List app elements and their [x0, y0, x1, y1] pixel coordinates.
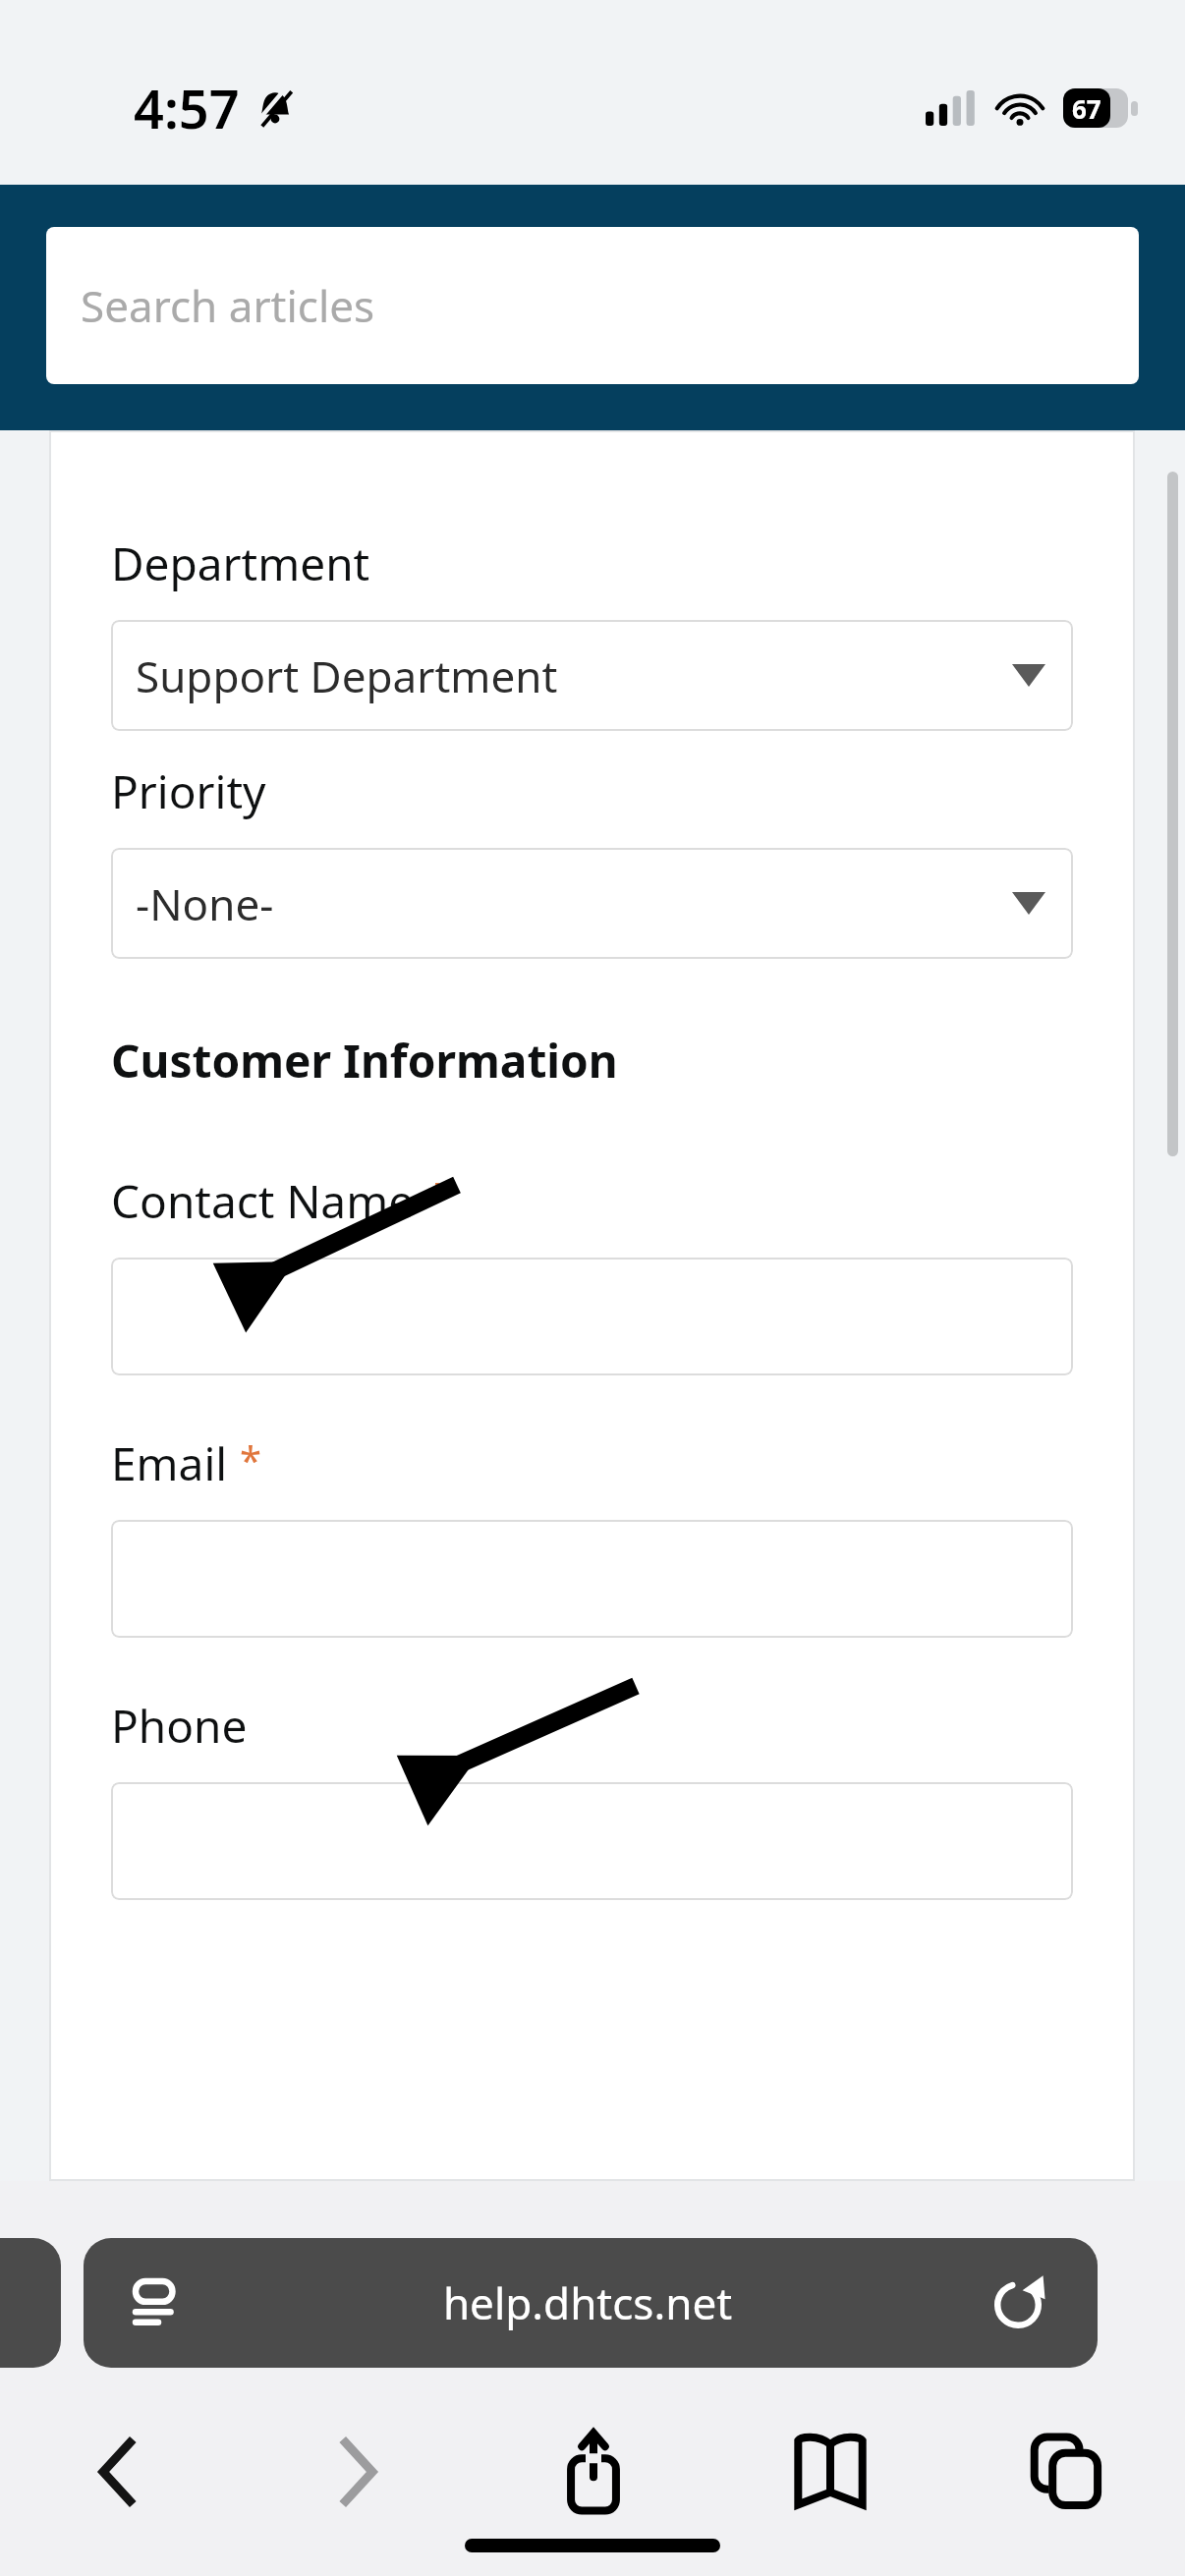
staticText: Email [111, 1432, 228, 1494]
button[interactable] [111, 1520, 1073, 1638]
button[interactable]: Support Department [111, 620, 1073, 731]
button[interactable] [111, 1782, 1073, 1900]
staticText: Phone [111, 1695, 248, 1757]
staticText: 4:57 [134, 72, 240, 144]
staticText: Department [111, 532, 370, 594]
button[interactable]: Reload [987, 2272, 1048, 2333]
button[interactable]: Share [475, 2413, 711, 2531]
staticText: -None- [136, 874, 274, 933]
button[interactable]: Search articles [46, 227, 1139, 384]
button[interactable]: Reader view [84, 2238, 1098, 2368]
staticText: Customer Information [111, 1030, 618, 1092]
staticText: 67 [1072, 91, 1101, 126]
button[interactable]: Reader view [127, 2272, 188, 2333]
button[interactable] [111, 1258, 1073, 1375]
button[interactable]: Tabs [948, 2413, 1185, 2531]
staticText: Search articles [81, 276, 375, 335]
staticText: * [426, 1170, 449, 1223]
staticText: help.dhtcs.net [188, 2273, 987, 2332]
button[interactable]: Bookmarks [711, 2413, 948, 2531]
button[interactable]: -None- [111, 848, 1073, 959]
staticText: * [240, 1432, 262, 1485]
staticText: Contact Name [111, 1170, 415, 1232]
staticText: Support Department [136, 646, 558, 705]
button[interactable]: Back [0, 2413, 238, 2531]
staticText: Priority [111, 760, 266, 822]
button[interactable]: Forward [238, 2413, 475, 2531]
button[interactable]: Previous tab [0, 2238, 61, 2368]
